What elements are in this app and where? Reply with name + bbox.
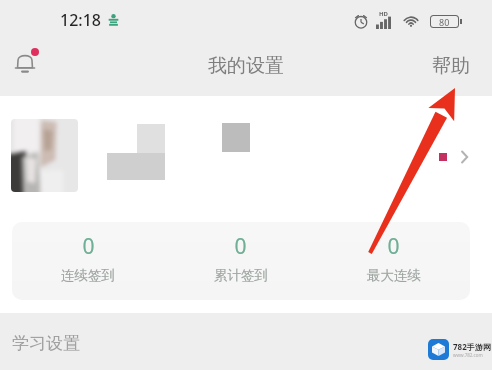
- button[interactable]: 0: [12, 222, 164, 293]
- staticText: www.782.com: [453, 352, 483, 358]
- staticText: 782手游网: [453, 341, 491, 352]
- staticText: 累计签到: [214, 267, 268, 284]
- button[interactable]: 帮助: [410, 40, 492, 92]
- button[interactable]: 0: [164, 222, 317, 293]
- button[interactable]: Notifications: [3, 40, 47, 84]
- staticText: 0: [387, 232, 400, 261]
- button[interactable]: More: [451, 144, 477, 170]
- staticText: HD: [379, 10, 388, 18]
- staticText: 80: [439, 16, 450, 27]
- staticText: 连续签到: [61, 267, 115, 284]
- staticText: 最大连续: [367, 267, 421, 284]
- staticText: 12:18: [60, 9, 101, 31]
- staticText: 0: [234, 232, 247, 261]
- button[interactable]: 0: [317, 222, 470, 293]
- staticText: 我的设置: [208, 54, 284, 78]
- staticText: 0: [82, 232, 95, 261]
- staticText: 学习设置: [12, 333, 80, 354]
- button[interactable]: Profile photo: [11, 119, 78, 192]
- staticText: 帮助: [432, 54, 470, 78]
